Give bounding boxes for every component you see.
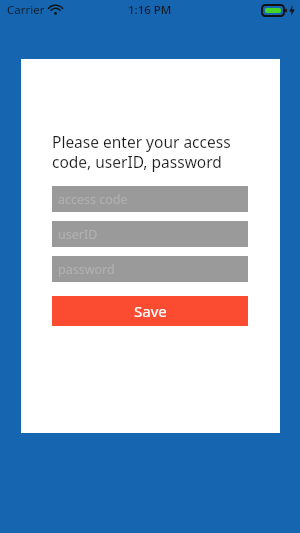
button[interactable]: access code [52, 186, 248, 212]
staticText: access code [58, 191, 128, 208]
staticText: Save [134, 301, 167, 321]
staticText: password [58, 261, 115, 278]
staticText: 1:16 PM [128, 2, 172, 18]
staticText: Carrier [7, 2, 45, 18]
staticText: userID [58, 226, 98, 243]
button[interactable]: Save [52, 296, 248, 326]
staticText: Please enter your access code, userID, p… [52, 131, 248, 172]
button[interactable]: password [52, 256, 248, 282]
